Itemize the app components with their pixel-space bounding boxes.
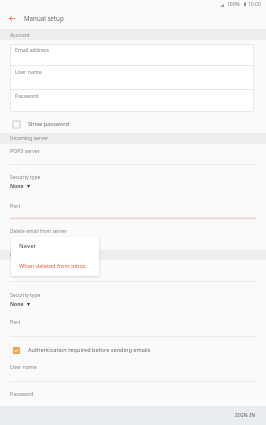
button[interactable]: Show password <box>0 115 266 133</box>
button[interactable] <box>0 386 266 405</box>
button[interactable]: SIGN IN <box>226 406 264 425</box>
button[interactable] <box>11 257 99 276</box>
button[interactable] <box>0 223 266 245</box>
button[interactable] <box>10 66 254 89</box>
staticText: Never <box>19 242 37 250</box>
staticText: Account <box>10 31 30 38</box>
button[interactable]: Authentication required before sending e… <box>0 341 266 359</box>
button[interactable] <box>0 313 266 334</box>
staticText: Show password <box>28 120 70 128</box>
button[interactable] <box>11 237 99 257</box>
staticText: Incoming server <box>10 135 49 142</box>
staticText: User name <box>10 363 37 370</box>
staticText: 100% <box>227 1 240 8</box>
staticText: Port <box>10 318 21 325</box>
button[interactable] <box>0 169 266 193</box>
button[interactable] <box>10 89 254 112</box>
staticText: None <box>10 183 24 190</box>
staticText: Delete email from server <box>10 228 67 235</box>
button[interactable] <box>0 197 266 218</box>
staticText: Outgoing server <box>10 252 49 259</box>
button[interactable] <box>10 44 254 65</box>
staticText: 10:00 <box>248 1 261 8</box>
button[interactable] <box>0 287 266 311</box>
staticText: Password <box>15 92 39 99</box>
staticText: When deleted from inbox <box>19 262 86 270</box>
staticText: Password <box>10 390 34 397</box>
staticText: User name <box>15 68 42 75</box>
button[interactable] <box>0 359 266 380</box>
staticText: Authentication required before sending e… <box>28 346 151 354</box>
staticText: Manual setup <box>24 14 64 22</box>
staticText: Security type <box>10 174 41 181</box>
staticText: Email address <box>15 46 49 53</box>
button[interactable]: Back <box>5 11 19 25</box>
staticText: None <box>10 301 24 308</box>
staticText: Security type <box>10 292 41 299</box>
staticText: POP3 server <box>10 147 40 154</box>
button[interactable] <box>0 144 266 165</box>
staticText: SIGN IN <box>235 412 256 419</box>
staticText: Port <box>10 202 21 209</box>
